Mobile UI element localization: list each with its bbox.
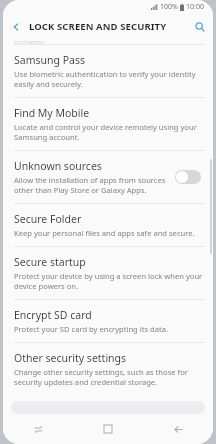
button[interactable]: Samsung Pass — [3, 45, 213, 98]
button[interactable]: Secure startup — [3, 247, 213, 300]
button[interactable]: Encrypt SD card — [3, 300, 213, 343]
button[interactable]: Search — [187, 14, 213, 39]
staticText: Protect your SD card by encrypting its d… — [14, 324, 169, 334]
staticText: SECURITY — [14, 39, 44, 44]
staticText: Allow the installation of apps from sour… — [14, 175, 169, 195]
staticText: Change other security settings, such as … — [14, 367, 205, 387]
staticText: Locate and control your device remotely … — [14, 122, 205, 142]
button[interactable]: Back — [143, 414, 213, 444]
button[interactable]: Recent apps — [3, 414, 73, 444]
staticText: Protect your device by using a screen lo… — [14, 271, 205, 291]
staticText: 100% — [160, 2, 178, 12]
staticText: Keep your personal files and apps safe a… — [14, 228, 195, 238]
button[interactable]: Unknown sources — [3, 151, 213, 204]
staticText: Find My Mobile — [14, 106, 90, 120]
button[interactable]: Other security settings — [3, 343, 213, 395]
button[interactable]: Navigate up — [3, 14, 29, 39]
staticText: Other security settings — [14, 351, 127, 365]
button[interactable]: Unknown sources toggle — [175, 170, 201, 184]
staticText: Samsung Pass — [14, 53, 85, 67]
button[interactable]: Find My Mobile — [3, 98, 213, 151]
staticText: Secure Folder — [14, 212, 82, 226]
staticText: Unknown sources — [14, 159, 102, 173]
button[interactable]: Home — [73, 414, 143, 444]
staticText: Encrypt SD card — [14, 308, 92, 322]
staticText: Secure startup — [14, 255, 86, 269]
button[interactable]: Secure Folder — [3, 204, 213, 247]
staticText: Use biometric authentication to verify y… — [14, 69, 205, 89]
staticText: 10:00 — [186, 2, 204, 12]
staticText: LOCK SCREEN AND SECURITY — [29, 20, 187, 33]
